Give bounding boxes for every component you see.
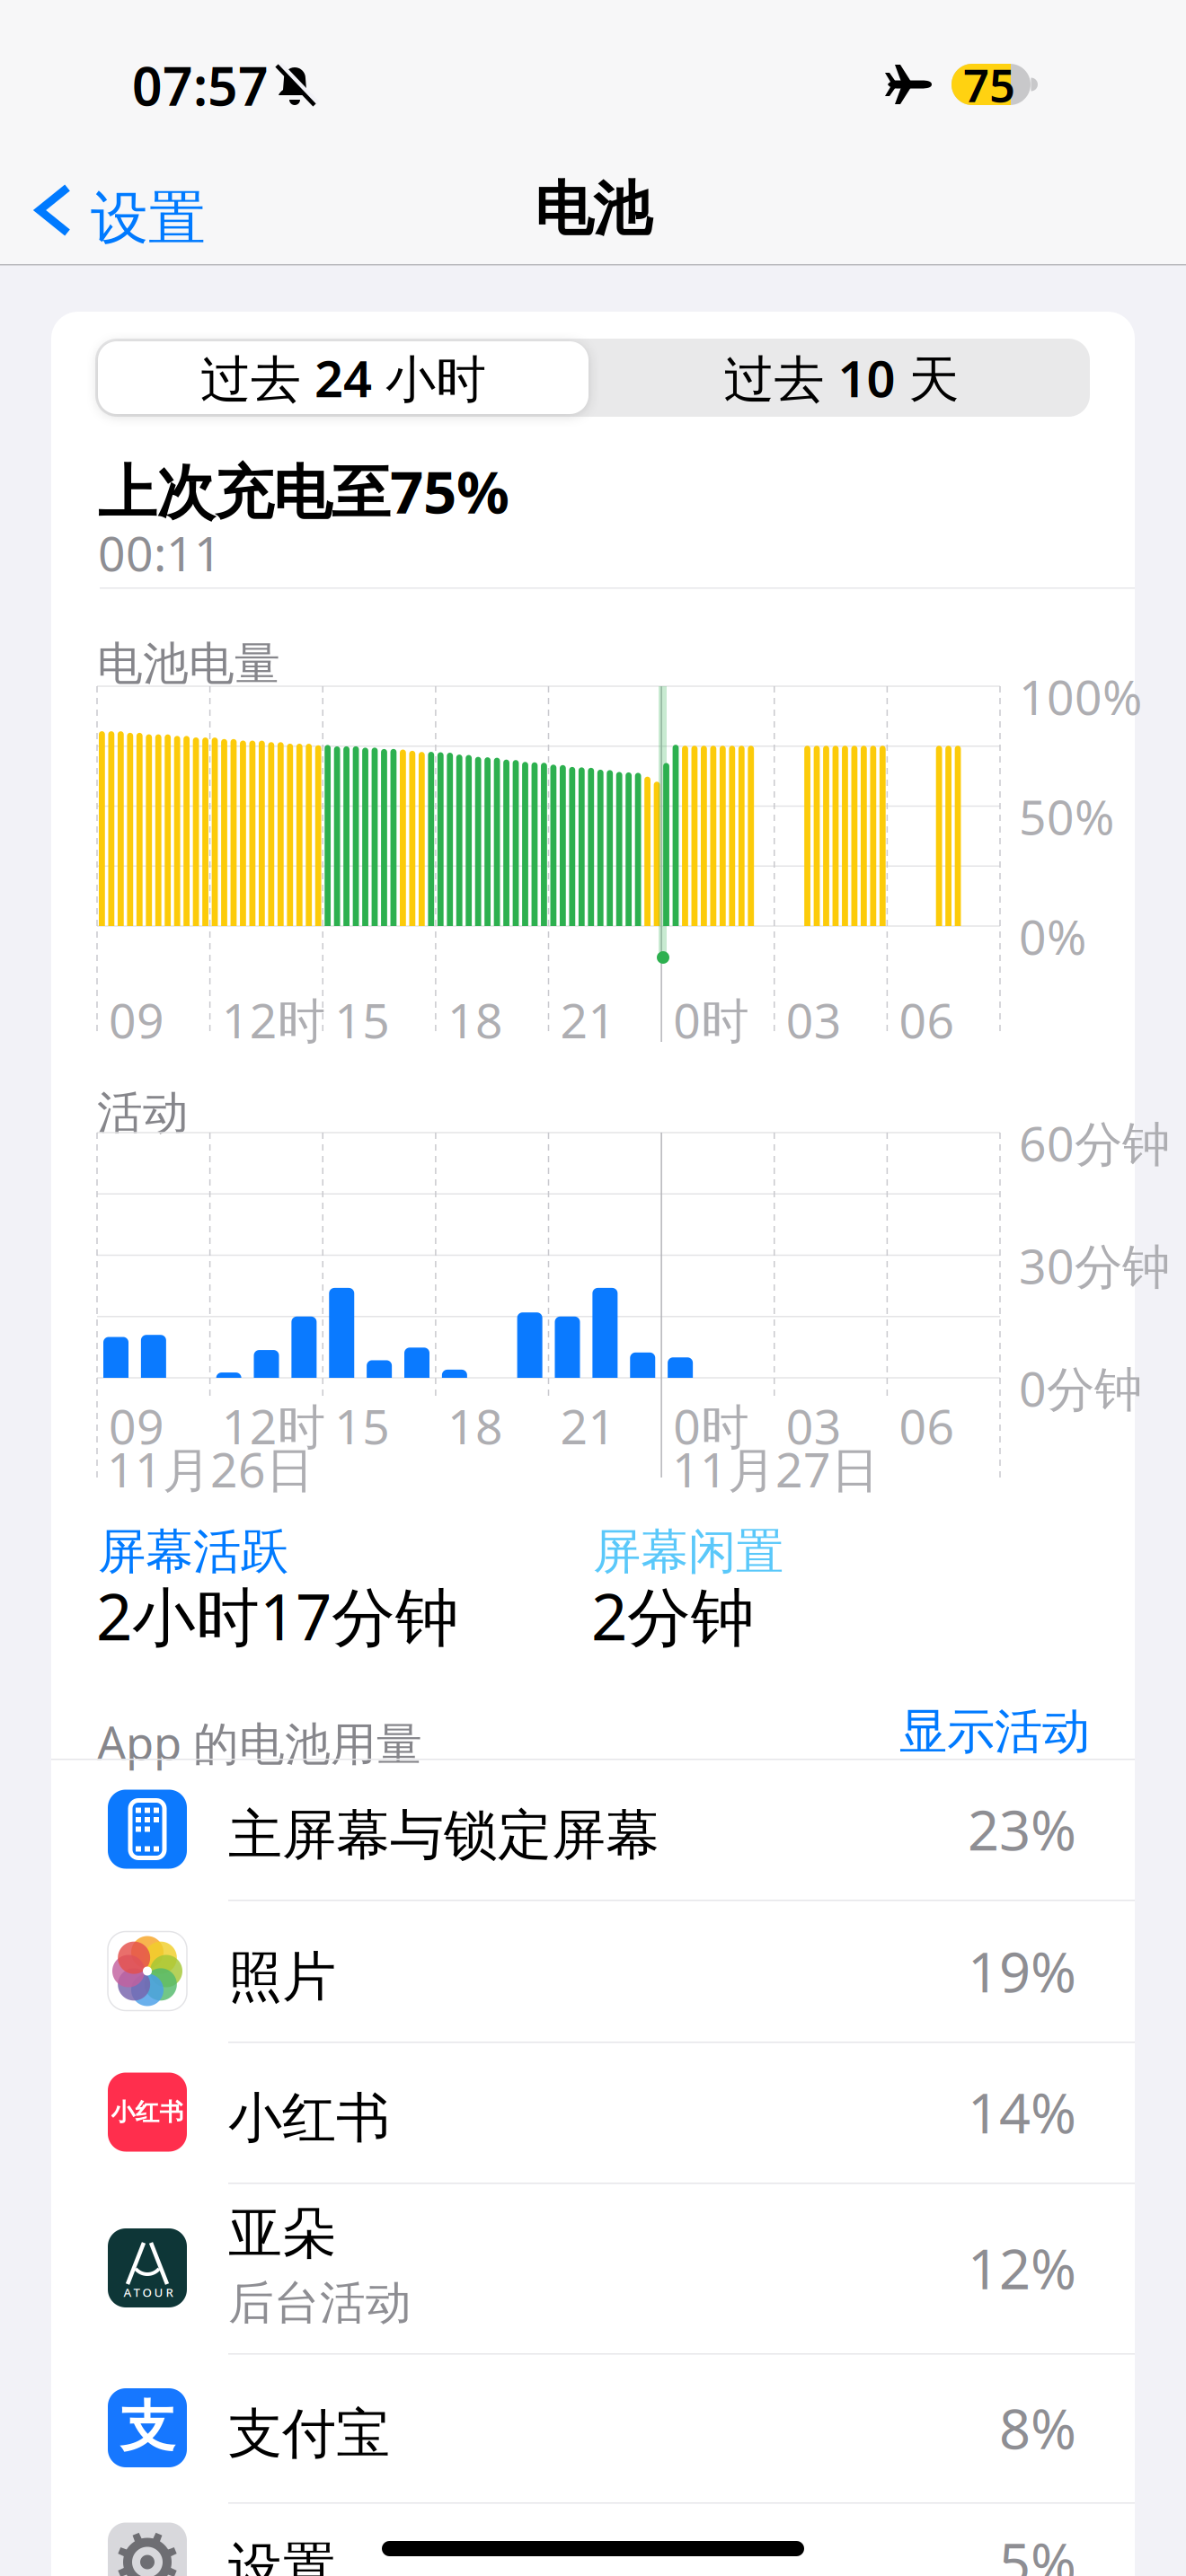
staticText: 设置 <box>228 2535 336 2576</box>
staticText: 显示活动 <box>899 1702 1090 1761</box>
staticText: App 的电池用量 <box>97 1712 422 1773</box>
staticText: 支 <box>120 2393 175 2461</box>
staticText: 12时 <box>222 988 325 1052</box>
staticText: 12% <box>968 2231 1076 2304</box>
staticText: 电池 <box>535 173 651 245</box>
staticText: 屏幕活跃 <box>98 1522 288 1581</box>
staticText: 0时 <box>673 1394 749 1458</box>
staticText: 75 <box>963 54 1015 115</box>
staticText: 亚朵 <box>228 2201 336 2267</box>
button[interactable]: 小红书 <box>51 2042 1135 2183</box>
button[interactable]: ATOUR <box>51 2183 1135 2353</box>
staticText: 8% <box>999 2391 1076 2464</box>
staticText: 03 <box>786 988 842 1052</box>
staticText: 活动 <box>97 1085 189 1141</box>
staticText: 07:57 <box>132 50 269 120</box>
staticText: 60分钟 <box>1019 1111 1170 1175</box>
button[interactable]: 过去 24 小时 <box>98 341 589 414</box>
staticText: 0% <box>1019 904 1086 968</box>
staticText: 23% <box>968 1793 1076 1866</box>
staticText: 0时 <box>673 988 749 1052</box>
staticText: 100% <box>1019 665 1142 728</box>
staticText: 过去 10 天 <box>724 344 959 411</box>
button[interactable]: 设置 <box>51 2492 1135 2576</box>
staticText: 21 <box>560 1394 616 1458</box>
staticText: 15 <box>334 1394 390 1458</box>
staticText: 14% <box>968 2076 1076 2149</box>
staticText: 06 <box>899 988 955 1052</box>
staticText: 2小时17分钟 <box>96 1574 459 1658</box>
staticText: 2分钟 <box>591 1574 755 1658</box>
staticText: 小红书 <box>228 2085 390 2151</box>
staticText: 09 <box>109 1394 164 1458</box>
staticText: 支付宝 <box>228 2401 390 2467</box>
staticText: 过去 24 小时 <box>200 344 486 411</box>
staticText: 50% <box>1019 785 1114 848</box>
staticText: 主屏幕与锁定屏幕 <box>228 1802 659 1868</box>
staticText: 12时 <box>222 1394 325 1458</box>
button[interactable]: 主屏幕与锁定屏幕 <box>51 1759 1135 1900</box>
staticText: 5% <box>999 2526 1076 2576</box>
staticText: 设置 <box>91 183 206 254</box>
button[interactable]: 照片 <box>51 1901 1135 2042</box>
staticText: 09 <box>109 988 164 1052</box>
staticText: 19% <box>968 1935 1076 2008</box>
button[interactable]: 支 <box>51 2353 1135 2502</box>
staticText: 照片 <box>228 1944 336 2010</box>
staticText: 屏幕闲置 <box>593 1522 783 1581</box>
staticText: ATOUR <box>124 2284 173 2300</box>
staticText: 11月26日 <box>107 1437 314 1501</box>
staticText: 30分钟 <box>1019 1234 1170 1297</box>
staticText: 21 <box>560 988 616 1052</box>
staticText: 15 <box>334 988 390 1052</box>
button[interactable]: 设置 <box>18 174 234 246</box>
button[interactable]: 显示活动 <box>820 1707 1090 1757</box>
staticText: 后台活动 <box>228 2275 412 2331</box>
staticText: 06 <box>899 1394 955 1458</box>
staticText: 0分钟 <box>1019 1356 1142 1420</box>
staticText: 18 <box>447 988 503 1052</box>
staticText: 上次充电至75% <box>98 452 509 530</box>
staticText: 小红书 <box>111 2097 184 2127</box>
button[interactable]: 过去 10 天 <box>593 339 1090 417</box>
staticText: 11月27日 <box>672 1437 879 1501</box>
staticText: 03 <box>786 1394 842 1458</box>
staticText: 18 <box>447 1394 503 1458</box>
staticText: 00:11 <box>98 521 222 585</box>
staticText: 电池电量 <box>97 636 280 692</box>
